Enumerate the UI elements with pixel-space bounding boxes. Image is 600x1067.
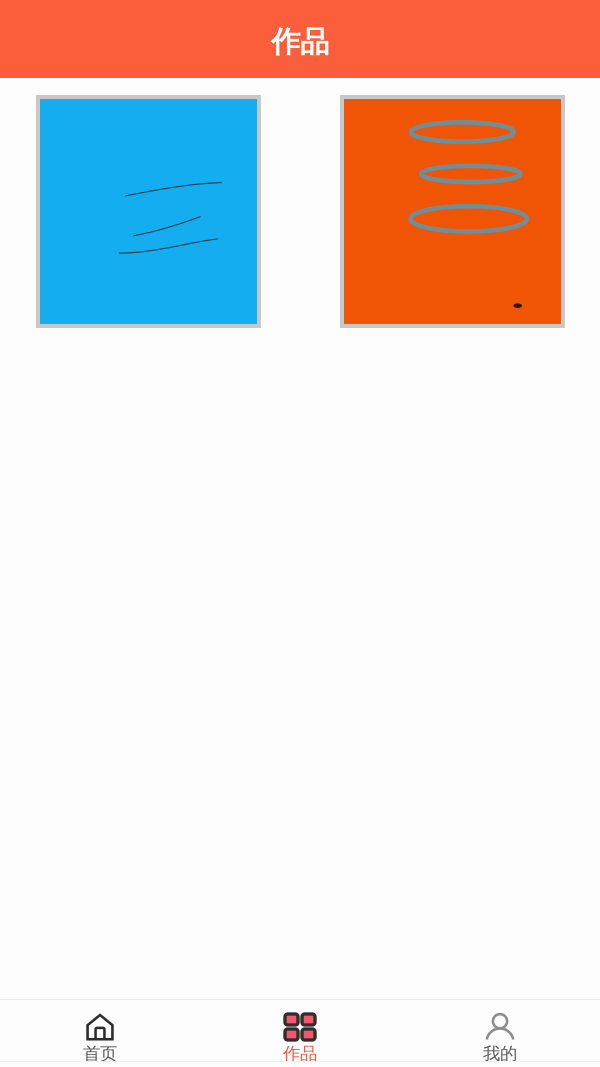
button[interactable]: 首页 <box>0 999 200 1067</box>
button[interactable]: 作品 <box>200 999 400 1067</box>
button[interactable]: 我的 <box>400 999 600 1067</box>
staticText: 我的 <box>483 1043 517 1064</box>
button[interactable]: 作品 1 <box>36 95 261 328</box>
button[interactable]: 作品 2 <box>340 95 565 328</box>
staticText: 作品 <box>283 1043 317 1064</box>
staticText: 作品 <box>271 24 329 60</box>
staticText: 首页 <box>83 1043 117 1064</box>
